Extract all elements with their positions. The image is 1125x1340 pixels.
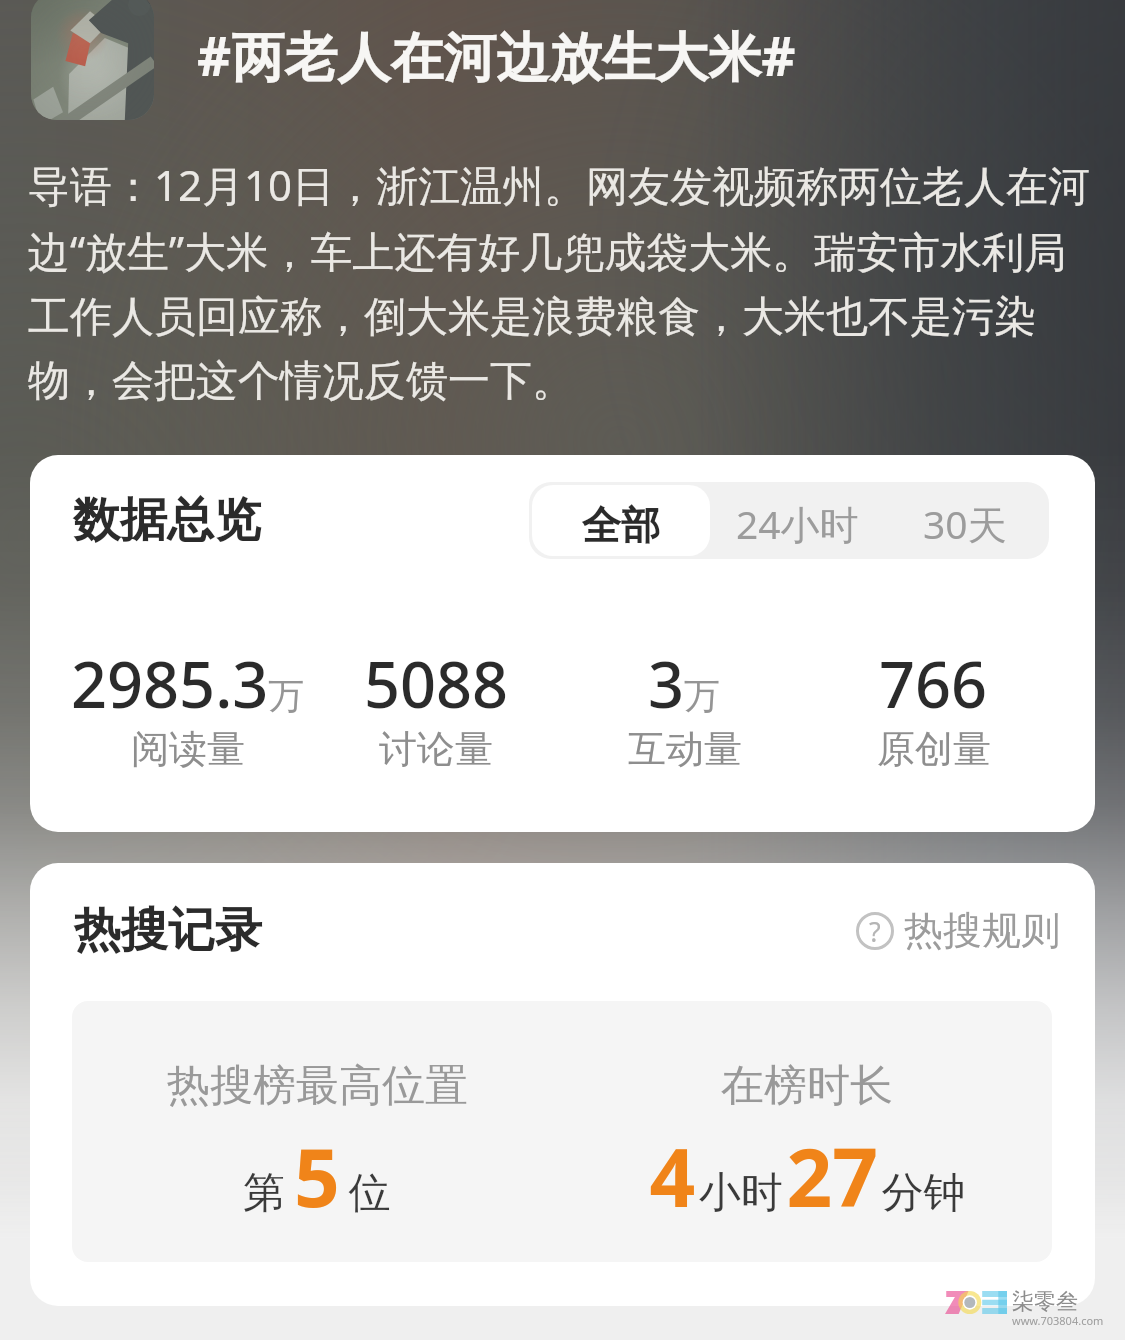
button[interactable]: 在榜时长 <box>562 1001 1052 1262</box>
staticText: www.703804.com <box>1012 1313 1104 1328</box>
button[interactable]: 2985.3万 <box>64 641 312 775</box>
staticText: 原创量 <box>877 725 991 773</box>
button[interactable]: 30天 <box>881 482 1049 559</box>
button[interactable]: 5088 <box>312 641 560 775</box>
staticText: 柒零叁 <box>1012 1288 1078 1316</box>
staticText: ? <box>869 913 881 950</box>
staticText: 766 <box>879 641 988 727</box>
staticText: 第 5 位 <box>243 1121 391 1230</box>
staticText: 30天 <box>923 497 1007 550</box>
button[interactable]: 全部 <box>532 485 710 556</box>
staticText: 阅读量 <box>131 725 245 773</box>
staticText: 数据总览 <box>73 491 261 550</box>
button[interactable]: #两老人在河边放生大米# <box>197 0 1097 110</box>
staticText: 互动量 <box>628 725 742 773</box>
staticText: 在榜时长 <box>721 1059 893 1113</box>
staticText: 3万 <box>648 641 721 727</box>
button[interactable]: 话题配图 <box>31 0 154 120</box>
button[interactable]: ? <box>856 906 1060 955</box>
staticText: #两老人在河边放生大米# <box>197 19 796 91</box>
staticText: 讨论量 <box>379 725 493 773</box>
staticText: 热搜规则 <box>904 906 1060 955</box>
button[interactable]: 3万 <box>560 641 809 775</box>
staticText: 2985.3万 <box>71 641 305 727</box>
button[interactable]: 热搜榜最高位置 <box>72 1001 562 1262</box>
button[interactable]: 24小时 <box>713 482 881 559</box>
staticText: 热搜记录 <box>74 901 262 960</box>
button[interactable]: 766 <box>809 641 1058 775</box>
staticText: 5088 <box>364 641 509 727</box>
staticText: 导语：12月10日，浙江温州。网友发视频称两位老人在河边“放生”大米，车上还有好… <box>28 156 1101 407</box>
staticText: 4 小时 27 分钟 <box>649 1121 966 1230</box>
staticText: 热搜榜最高位置 <box>167 1059 468 1113</box>
staticText: 24小时 <box>736 497 859 550</box>
staticText: 全部 <box>582 501 660 550</box>
button[interactable]: 水印 柒零叁 703804.com <box>945 1288 1104 1331</box>
